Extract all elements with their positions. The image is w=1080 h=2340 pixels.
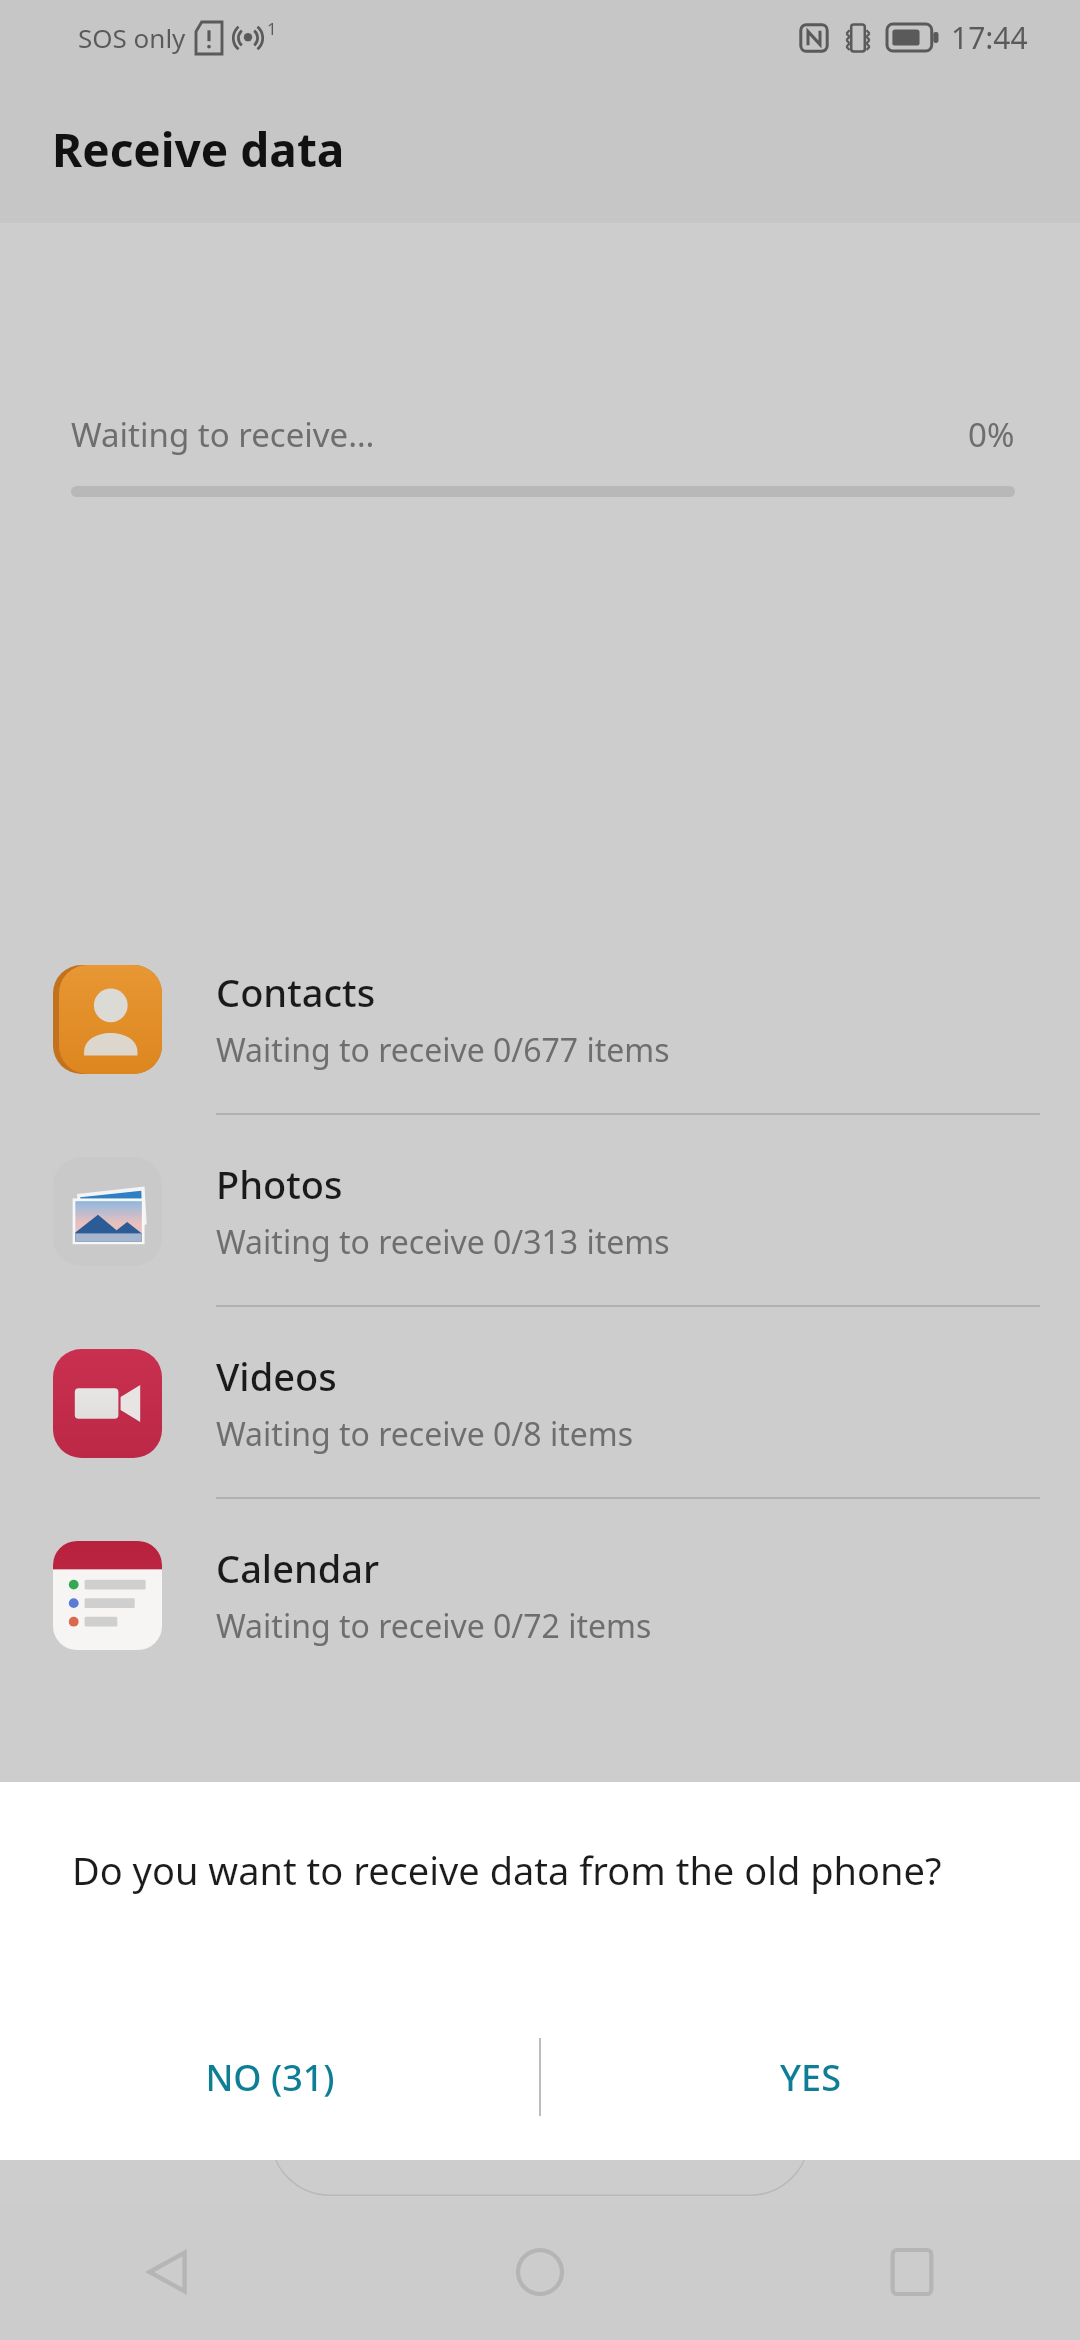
staticText: Waiting to receive 0/313 items xyxy=(216,1220,670,1264)
staticText: SOS only xyxy=(78,20,186,55)
button[interactable]: Photos xyxy=(0,1115,1080,1307)
staticText: Do you want to receive data from the old… xyxy=(72,1844,942,1896)
staticText: Waiting to receive 0/72 items xyxy=(216,1604,652,1648)
staticText: YES xyxy=(780,2053,841,2102)
staticText: Waiting to receive 0/677 items xyxy=(216,1028,670,1072)
staticText: NO (31) xyxy=(205,2053,335,2102)
staticText: 1 xyxy=(267,17,277,40)
staticText: Waiting to receive 0/8 items xyxy=(216,1412,633,1456)
staticText: Photos xyxy=(216,1158,343,1210)
button[interactable]: YES xyxy=(541,2012,1080,2142)
button[interactable]: Back xyxy=(120,2224,216,2320)
button[interactable]: Contacts xyxy=(0,923,1080,1115)
button[interactable]: Home xyxy=(492,2224,588,2320)
staticText: 0% xyxy=(968,412,1015,457)
staticText: Calendar xyxy=(216,1542,380,1594)
staticText: Waiting to receive… xyxy=(71,412,375,457)
button[interactable]: Videos xyxy=(0,1307,1080,1499)
button[interactable]: NO (31) xyxy=(0,2012,539,2142)
staticText: Receive data xyxy=(52,118,345,181)
staticText: 17:44 xyxy=(951,17,1028,58)
button[interactable]: Calendar xyxy=(0,1499,1080,1691)
staticText: Contacts xyxy=(216,966,376,1018)
staticText: Videos xyxy=(216,1350,337,1402)
button[interactable]: Recent apps xyxy=(864,2224,960,2320)
